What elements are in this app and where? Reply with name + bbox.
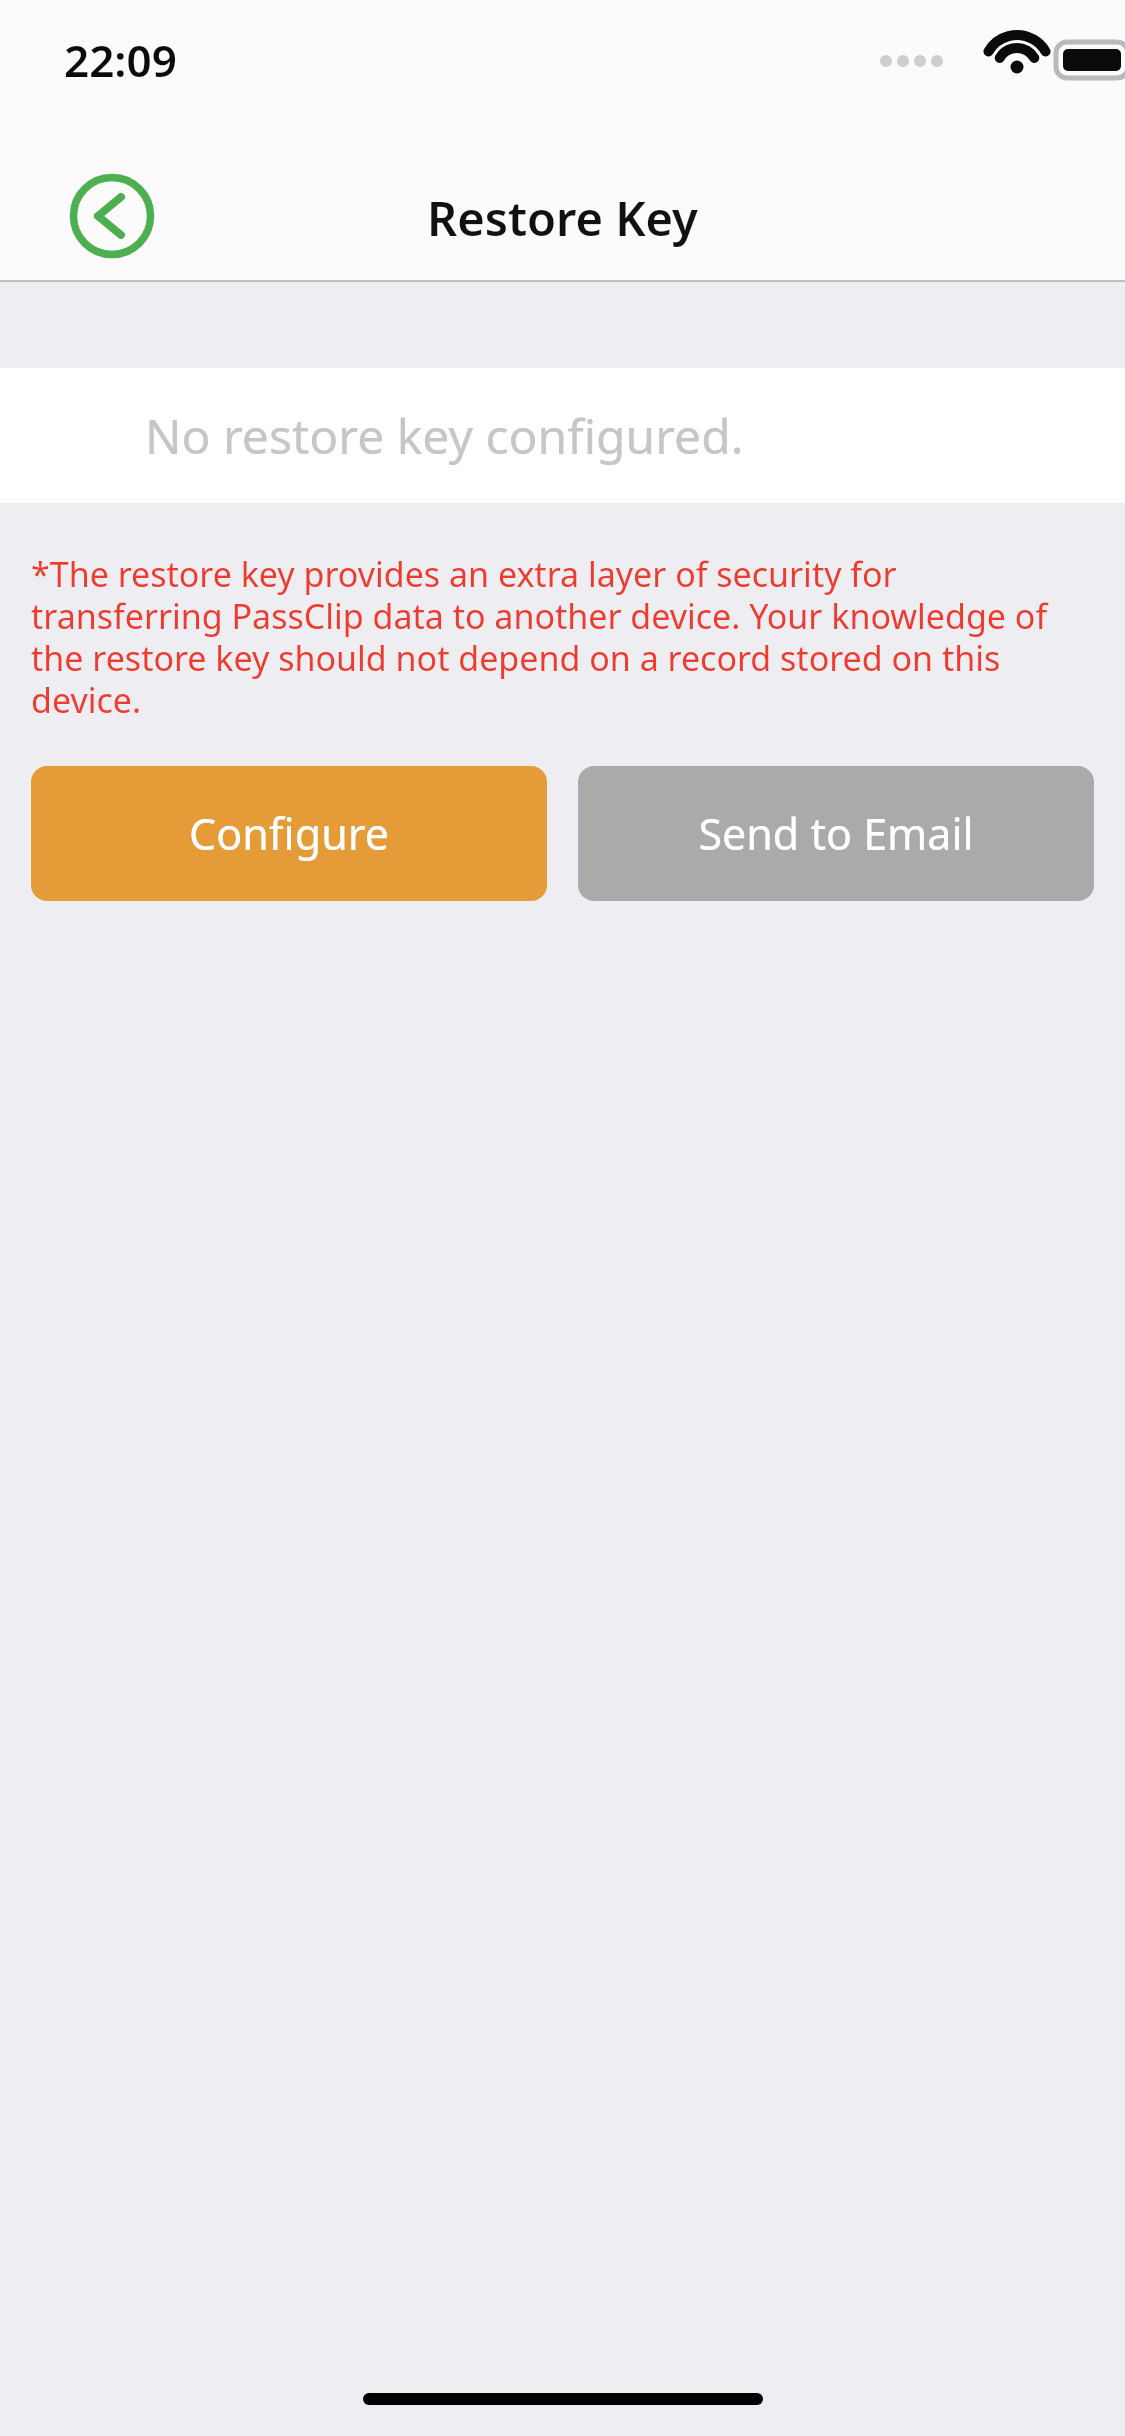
staticText: *The restore key provides an extra layer…	[31, 551, 1091, 723]
button[interactable]: Back	[62, 166, 162, 266]
button[interactable]: Send to Email	[578, 766, 1094, 901]
button[interactable]: Configure	[31, 766, 547, 901]
staticText: 22:09	[64, 30, 177, 90]
staticText: No restore key configured.	[145, 403, 744, 468]
staticText: Restore Key	[427, 186, 698, 250]
button[interactable]: No restore key configured.	[0, 368, 1125, 503]
staticText: Configure	[189, 804, 389, 863]
staticText: Send to Email	[698, 804, 974, 863]
